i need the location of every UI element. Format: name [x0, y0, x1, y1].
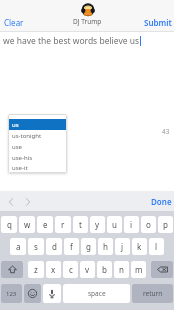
button[interactable]: e [37, 216, 53, 233]
button[interactable]: Done [145, 192, 174, 211]
button[interactable]: d [46, 238, 62, 255]
button[interactable]: f [64, 238, 79, 255]
staticText: s [34, 241, 38, 252]
staticText: n [119, 264, 124, 275]
staticText: z [34, 264, 38, 275]
button[interactable]: g [81, 238, 96, 255]
staticText: q [7, 219, 12, 230]
button[interactable]: t [73, 216, 88, 233]
staticText: b [102, 264, 107, 275]
staticText: m [135, 264, 143, 275]
staticText: we have the best words believe us [3, 35, 140, 47]
button[interactable]: 123 [1, 284, 22, 303]
staticText: us-tonight [12, 132, 42, 140]
staticText: Submit [144, 17, 172, 28]
button[interactable]: Clear [0, 13, 30, 31]
button[interactable]: Dictation [43, 284, 61, 303]
staticText: space [88, 289, 106, 298]
button[interactable]: i [124, 216, 139, 233]
staticText: Clear [4, 17, 24, 28]
button[interactable]: Previous field [2, 193, 19, 210]
staticText: k [137, 241, 142, 252]
button[interactable]: p [158, 216, 173, 233]
staticText: t [79, 219, 82, 230]
button[interactable]: use [8, 141, 67, 152]
staticText: r [61, 219, 65, 230]
button[interactable]: Backspace [151, 261, 173, 278]
staticText: l [155, 241, 158, 252]
staticText: x [51, 264, 56, 275]
button[interactable]: s [28, 238, 44, 255]
staticText: f [70, 241, 73, 252]
staticText: use [12, 143, 22, 151]
button[interactable]: j [115, 238, 130, 255]
button[interactable]: k [132, 238, 147, 255]
staticText: o [146, 219, 151, 230]
button[interactable]: v [80, 261, 95, 278]
staticText: u [112, 219, 117, 230]
button[interactable]: l [149, 238, 164, 255]
button[interactable]: o [141, 216, 156, 233]
staticText: us [12, 121, 19, 129]
button[interactable]: Submit [138, 13, 174, 31]
button[interactable]: n [114, 261, 129, 278]
staticText: h [103, 241, 108, 252]
button[interactable]: a [10, 238, 26, 255]
staticText: w [24, 219, 31, 230]
button[interactable]: space [63, 284, 130, 303]
staticText: 123 [6, 290, 17, 298]
button[interactable]: q [1, 216, 17, 233]
button[interactable]: Shift [1, 261, 23, 278]
staticText: c [69, 264, 73, 275]
button[interactable]: Next field [19, 193, 36, 210]
button[interactable]: b [97, 261, 112, 278]
staticText: e [43, 219, 48, 230]
staticText: Done [151, 196, 172, 207]
button[interactable]: z [28, 261, 44, 278]
staticText: g [86, 241, 91, 252]
button[interactable]: r [55, 216, 71, 233]
staticText: 43 [162, 127, 170, 136]
button[interactable]: us-tonight [8, 130, 67, 141]
button[interactable]: u [107, 216, 122, 233]
staticText: a [16, 241, 21, 252]
button[interactable]: c [63, 261, 78, 278]
staticText: d [52, 241, 57, 252]
staticText: i [130, 219, 133, 230]
button[interactable]: return [132, 284, 173, 303]
staticText: use-his [12, 154, 33, 162]
staticText: p [163, 219, 168, 230]
button[interactable]: x [46, 261, 61, 278]
button[interactable]: use-it [8, 163, 67, 173]
staticText: DJ Trump [73, 17, 102, 26]
button[interactable]: y [90, 216, 105, 233]
staticText: v [85, 264, 90, 275]
button[interactable]: w [19, 216, 35, 233]
button[interactable]: us [8, 119, 67, 130]
button[interactable]: Emoji [24, 284, 41, 303]
button[interactable]: h [98, 238, 113, 255]
staticText: use-it [12, 164, 28, 172]
button[interactable]: use-his [8, 152, 67, 163]
staticText: j [121, 241, 124, 252]
staticText: y [95, 219, 100, 230]
button[interactable]: m [131, 261, 146, 278]
staticText: return [143, 289, 163, 298]
